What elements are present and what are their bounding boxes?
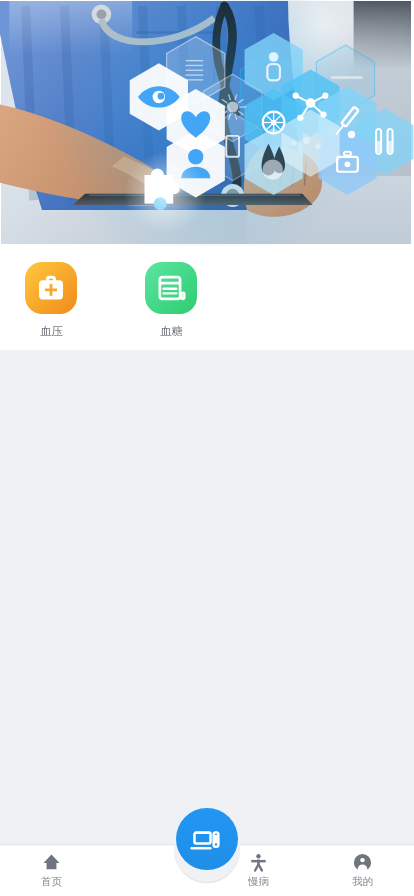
button[interactable]: 设备 [176, 808, 238, 870]
button[interactable]: 慢病 [206, 844, 310, 896]
button[interactable]: 我的 [310, 844, 414, 896]
staticText: 血糖 [160, 324, 183, 338]
staticText: 慢病 [248, 875, 269, 888]
button[interactable]: 血压 [17, 262, 85, 338]
staticText: 血压 [40, 324, 63, 338]
staticText: 我的 [352, 875, 373, 888]
button[interactable] [1, 1, 411, 244]
button[interactable]: 血糖 [137, 262, 205, 338]
button[interactable]: 首页 [0, 844, 103, 896]
staticText: 首页 [41, 875, 62, 888]
